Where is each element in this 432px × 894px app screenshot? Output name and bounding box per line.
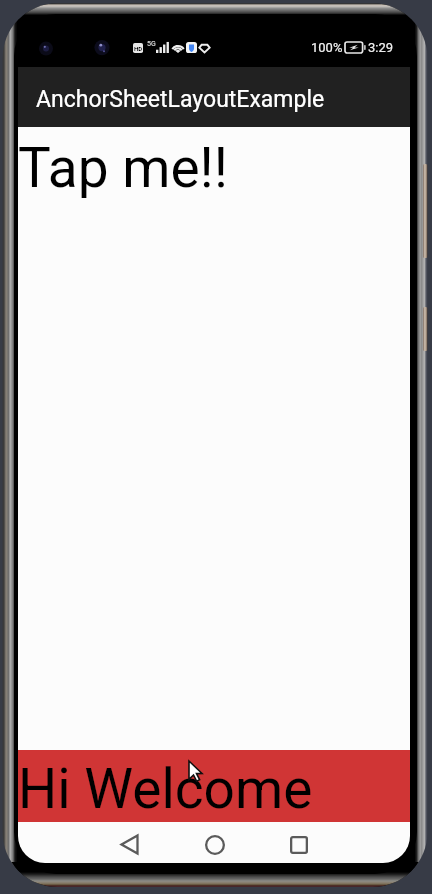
staticText: 3:29 — [368, 40, 394, 55]
button[interactable]: Back — [104, 822, 154, 863]
staticText: AnchorSheetLayoutExample — [36, 86, 325, 113]
staticText: Tap me!! — [18, 136, 228, 200]
button[interactable]: Home — [190, 822, 240, 863]
button[interactable]: Recent apps — [274, 822, 324, 863]
staticText: 100% — [311, 40, 343, 55]
staticText: HD — [134, 45, 143, 52]
staticText: Hi Welcome — [18, 757, 313, 821]
staticText: 5G — [147, 40, 156, 48]
button[interactable]: Hi Welcome — [18, 750, 410, 822]
button[interactable]: Tap me!! — [18, 136, 410, 200]
